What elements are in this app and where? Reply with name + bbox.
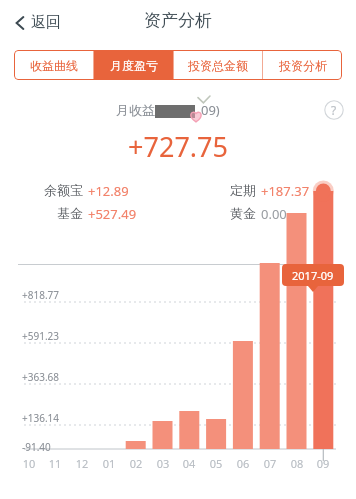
staticText: 收益曲线 — [30, 58, 78, 73]
staticText: 12 — [73, 456, 91, 471]
staticText: 2017-09 — [292, 268, 334, 283]
staticText: +363.68 — [22, 370, 59, 384]
staticText: 0.00 — [261, 205, 287, 223]
staticText: 04 — [180, 456, 198, 471]
staticText: +591.23 — [22, 329, 59, 343]
staticText: 投资总金额 — [188, 58, 248, 73]
staticText: 月度盈亏 — [110, 58, 158, 73]
button[interactable]: 2017-09 — [282, 264, 344, 286]
staticText: 08 — [288, 456, 306, 471]
staticText: 06 — [234, 456, 252, 471]
staticText: +527.49 — [88, 205, 137, 223]
button[interactable]: 返回 — [10, 9, 65, 36]
button[interactable]: Help — [324, 100, 344, 120]
staticText: +12.89 — [88, 182, 129, 200]
button[interactable]: 投资总金额 — [174, 50, 262, 80]
staticText: 黄金 — [190, 205, 256, 221]
staticText: +187.37 — [261, 182, 310, 200]
staticText: 02 — [127, 456, 145, 471]
staticText: 投资分析 — [279, 58, 327, 73]
staticText: 返回 — [31, 13, 61, 32]
staticText: +136.14 — [22, 411, 59, 425]
staticText: 11 — [46, 456, 64, 471]
button[interactable]: 投资分析 — [263, 50, 342, 80]
staticText: -91.40 — [22, 440, 51, 454]
staticText: 资产分析 — [0, 10, 356, 31]
staticText: ? — [331, 102, 337, 118]
staticText: 余额宝 — [0, 182, 83, 198]
staticText: 基金 — [0, 205, 83, 221]
staticText: 01 — [100, 456, 118, 471]
staticText: 05 — [207, 456, 225, 471]
staticText: 03 — [154, 456, 172, 471]
button[interactable]: 月度盈亏 — [94, 50, 173, 80]
staticText: 10 — [20, 456, 38, 471]
staticText: 07 — [261, 456, 279, 471]
button[interactable]: 收益曲线 — [14, 50, 93, 80]
staticText: 09) — [201, 101, 220, 119]
staticText: 月收益 — [116, 102, 155, 118]
staticText: 09 — [314, 456, 332, 471]
staticText: +727.75 — [0, 128, 356, 165]
staticText: +818.77 — [22, 288, 59, 302]
staticText: 定期 — [190, 182, 256, 198]
